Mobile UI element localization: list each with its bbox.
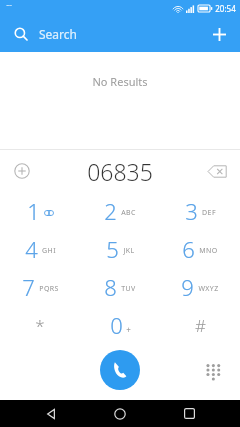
button[interactable]: Add contact xyxy=(8,157,36,185)
staticText: PQRS xyxy=(39,284,59,294)
button[interactable]: 7 xyxy=(0,268,80,306)
staticText: DEF xyxy=(202,208,216,218)
staticText: 1 xyxy=(27,196,40,226)
staticText: MNO xyxy=(199,246,218,256)
button[interactable]: 8 xyxy=(80,268,160,306)
staticText: * xyxy=(35,314,45,337)
button[interactable]: Home xyxy=(102,400,138,427)
button[interactable]: 0 xyxy=(80,306,160,344)
button[interactable]: * xyxy=(0,306,80,344)
staticText: TUV xyxy=(121,284,136,294)
button[interactable]: 2 xyxy=(80,192,160,230)
button[interactable]: Search xyxy=(0,16,240,52)
staticText: GHI xyxy=(42,246,56,256)
button[interactable]: Backspace xyxy=(202,156,232,186)
staticText: No Results xyxy=(92,74,148,89)
button[interactable]: Call xyxy=(100,350,140,390)
button[interactable]: Add xyxy=(202,17,236,51)
staticText: 9 xyxy=(181,272,194,302)
staticText: 7 xyxy=(22,272,35,302)
staticText: 2 xyxy=(104,196,117,226)
staticText: JKL xyxy=(123,246,135,256)
other: Search xyxy=(14,27,28,41)
button[interactable]: 5 xyxy=(80,230,160,268)
button[interactable]: 1 xyxy=(0,192,80,230)
staticText: 06835 xyxy=(87,156,153,187)
staticText: Search xyxy=(39,26,77,42)
staticText: 6 xyxy=(182,234,195,264)
staticText: ABC xyxy=(121,208,136,218)
staticText: 20:54 xyxy=(215,3,236,14)
staticText: 0 xyxy=(110,310,123,340)
staticText: 3 xyxy=(185,196,198,226)
staticText: + xyxy=(126,324,131,335)
staticText: # xyxy=(195,314,206,337)
button[interactable]: Dialpad xyxy=(198,357,228,387)
button[interactable]: 6 xyxy=(160,230,240,268)
button[interactable]: 3 xyxy=(160,192,240,230)
button[interactable]: 9 xyxy=(160,268,240,306)
button[interactable]: Recents xyxy=(171,400,207,427)
button[interactable]: 4 xyxy=(0,230,80,268)
staticText: WXYZ xyxy=(198,284,219,294)
staticText: ··· xyxy=(6,1,12,11)
button[interactable]: Back xyxy=(33,400,69,427)
staticText: 8 xyxy=(104,272,117,302)
button[interactable]: # xyxy=(160,306,240,344)
staticText: 5 xyxy=(106,234,119,264)
staticText: 4 xyxy=(25,234,38,264)
